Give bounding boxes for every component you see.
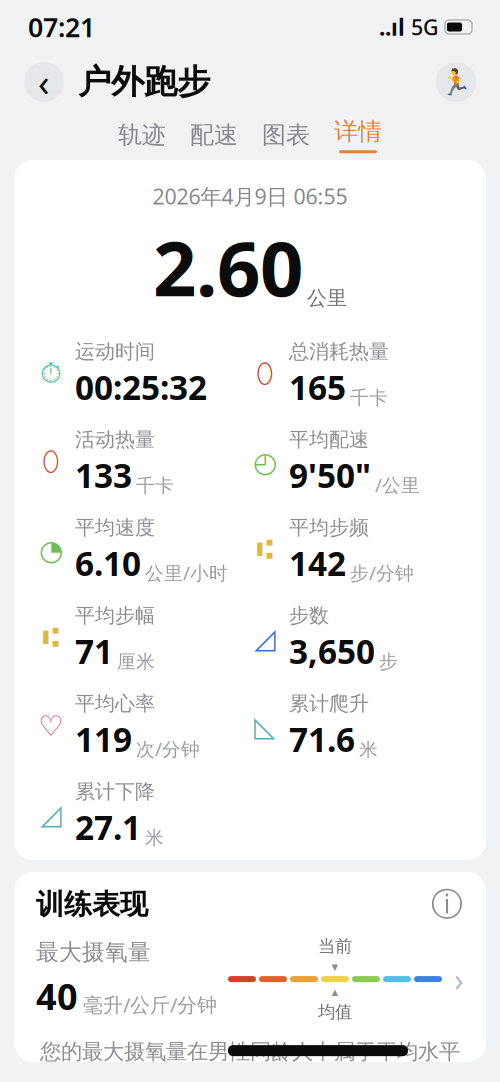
- staticText: 当前: [318, 936, 352, 957]
- staticText: 平均速度: [75, 515, 155, 540]
- staticText: 133: [75, 453, 132, 497]
- button[interactable]: 详情: [334, 117, 382, 153]
- staticText: 00:25:32: [75, 365, 207, 409]
- staticText: 活动热量: [75, 427, 155, 452]
- button[interactable]: 最大摄氧量: [36, 922, 464, 1022]
- staticText: 27.1: [75, 805, 141, 849]
- staticText: ▾: [331, 959, 338, 974]
- staticText: ◴: [253, 446, 277, 478]
- staticText: 配速: [190, 120, 238, 150]
- staticText: 次/分钟: [136, 736, 200, 761]
- staticText: 165: [289, 365, 346, 409]
- staticText: 平均心率: [75, 691, 155, 716]
- staticText: 累计下降: [75, 779, 155, 804]
- staticText: ‹: [38, 57, 50, 107]
- staticText: 步: [379, 650, 398, 673]
- staticText: 详情: [334, 117, 382, 146]
- staticText: 千卡: [136, 474, 174, 497]
- staticText: 千卡: [350, 386, 388, 409]
- staticText: ..ıl: [379, 12, 405, 42]
- staticText: 平均步频: [289, 515, 369, 540]
- staticText: 步数: [289, 603, 329, 628]
- staticText: /公里: [375, 472, 420, 497]
- button[interactable]: 说明: [430, 887, 464, 921]
- staticText: 2.60: [153, 216, 303, 317]
- staticText: 米: [145, 826, 164, 849]
- staticText: 6.10: [75, 541, 141, 585]
- staticText: 71: [75, 629, 113, 673]
- staticText: 平均配速: [289, 427, 369, 452]
- staticText: 总消耗热量: [289, 339, 389, 364]
- staticText: ⬯: [256, 361, 274, 388]
- staticText: ⬯: [42, 449, 60, 476]
- staticText: ◺: [254, 710, 276, 742]
- staticText: 最大摄氧量: [36, 938, 151, 966]
- staticText: 平均步幅: [75, 603, 155, 628]
- button[interactable]: 轨迹: [118, 120, 166, 150]
- staticText: ◔: [39, 534, 63, 566]
- button[interactable]: 配速: [190, 120, 238, 150]
- staticText: ⑆: [42, 625, 59, 652]
- staticText: 步/分钟: [350, 560, 414, 585]
- staticText: 运动时间: [75, 339, 155, 364]
- staticText: ⏱: [40, 361, 62, 388]
- staticText: 轨迹: [118, 120, 166, 150]
- staticText: 5G: [411, 13, 439, 41]
- button[interactable]: 图表: [262, 120, 310, 150]
- button[interactable]: 返回: [24, 62, 64, 102]
- staticText: ⓘ: [431, 885, 463, 924]
- staticText: ›: [454, 958, 464, 1000]
- staticText: 2026年4月9日 06:55: [152, 182, 347, 210]
- staticText: 户外跑步: [78, 61, 210, 102]
- staticText: ⑆: [256, 537, 273, 564]
- staticText: 🏃: [440, 67, 472, 96]
- staticText: 9'50": [289, 453, 371, 497]
- staticText: 图表: [262, 120, 310, 150]
- staticText: ◿: [254, 622, 276, 654]
- staticText: 3,650: [289, 629, 375, 673]
- staticText: 均值: [318, 1001, 352, 1022]
- staticText: ▴: [331, 984, 338, 999]
- staticText: ♡: [38, 710, 63, 742]
- staticText: 米: [359, 738, 378, 761]
- staticText: 毫升/公斤/分钟: [83, 991, 217, 1018]
- staticText: 训练表现: [36, 887, 148, 922]
- staticText: 142: [289, 541, 346, 585]
- staticText: 公里/小时: [145, 560, 228, 585]
- staticText: 71.6: [289, 717, 355, 761]
- staticText: 厘米: [117, 650, 155, 673]
- staticText: 您的最大摄氧量在男性同龄人中属于平均水平: [40, 1038, 460, 1065]
- button[interactable]: 运动类型: [436, 62, 476, 102]
- staticText: 07:21: [28, 9, 95, 45]
- staticText: 40: [36, 972, 78, 1020]
- staticText: 119: [75, 717, 132, 761]
- staticText: 累计爬升: [289, 691, 369, 716]
- staticText: ◿: [40, 798, 62, 830]
- staticText: 公里: [307, 286, 347, 310]
